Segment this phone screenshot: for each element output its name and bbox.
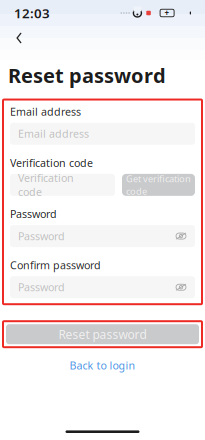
- staticText: Password: [18, 229, 65, 243]
- staticText: 12:03: [14, 4, 50, 22]
- staticText: Verification code: [18, 171, 74, 199]
- button[interactable]: Reset password: [3, 321, 202, 347]
- staticText: Email address: [10, 105, 81, 119]
- button[interactable]: Show password: [173, 279, 189, 295]
- staticText: Reset password: [58, 326, 146, 342]
- staticText: Verification code: [10, 156, 93, 170]
- button[interactable]: Back: [6, 26, 32, 50]
- staticText: Password: [18, 280, 65, 294]
- staticText: +: [165, 8, 170, 18]
- staticText: Back to login: [69, 358, 135, 372]
- button[interactable]: Back to login: [59, 354, 145, 376]
- staticText: Reset password: [8, 62, 166, 89]
- staticText: Password: [10, 207, 57, 221]
- staticText: Email address: [18, 127, 89, 141]
- button[interactable]: Show password: [173, 228, 189, 244]
- button[interactable]: Get verification code: [122, 174, 195, 196]
- staticText: Confirm password: [10, 258, 101, 272]
- staticText: Get verification code: [126, 172, 191, 197]
